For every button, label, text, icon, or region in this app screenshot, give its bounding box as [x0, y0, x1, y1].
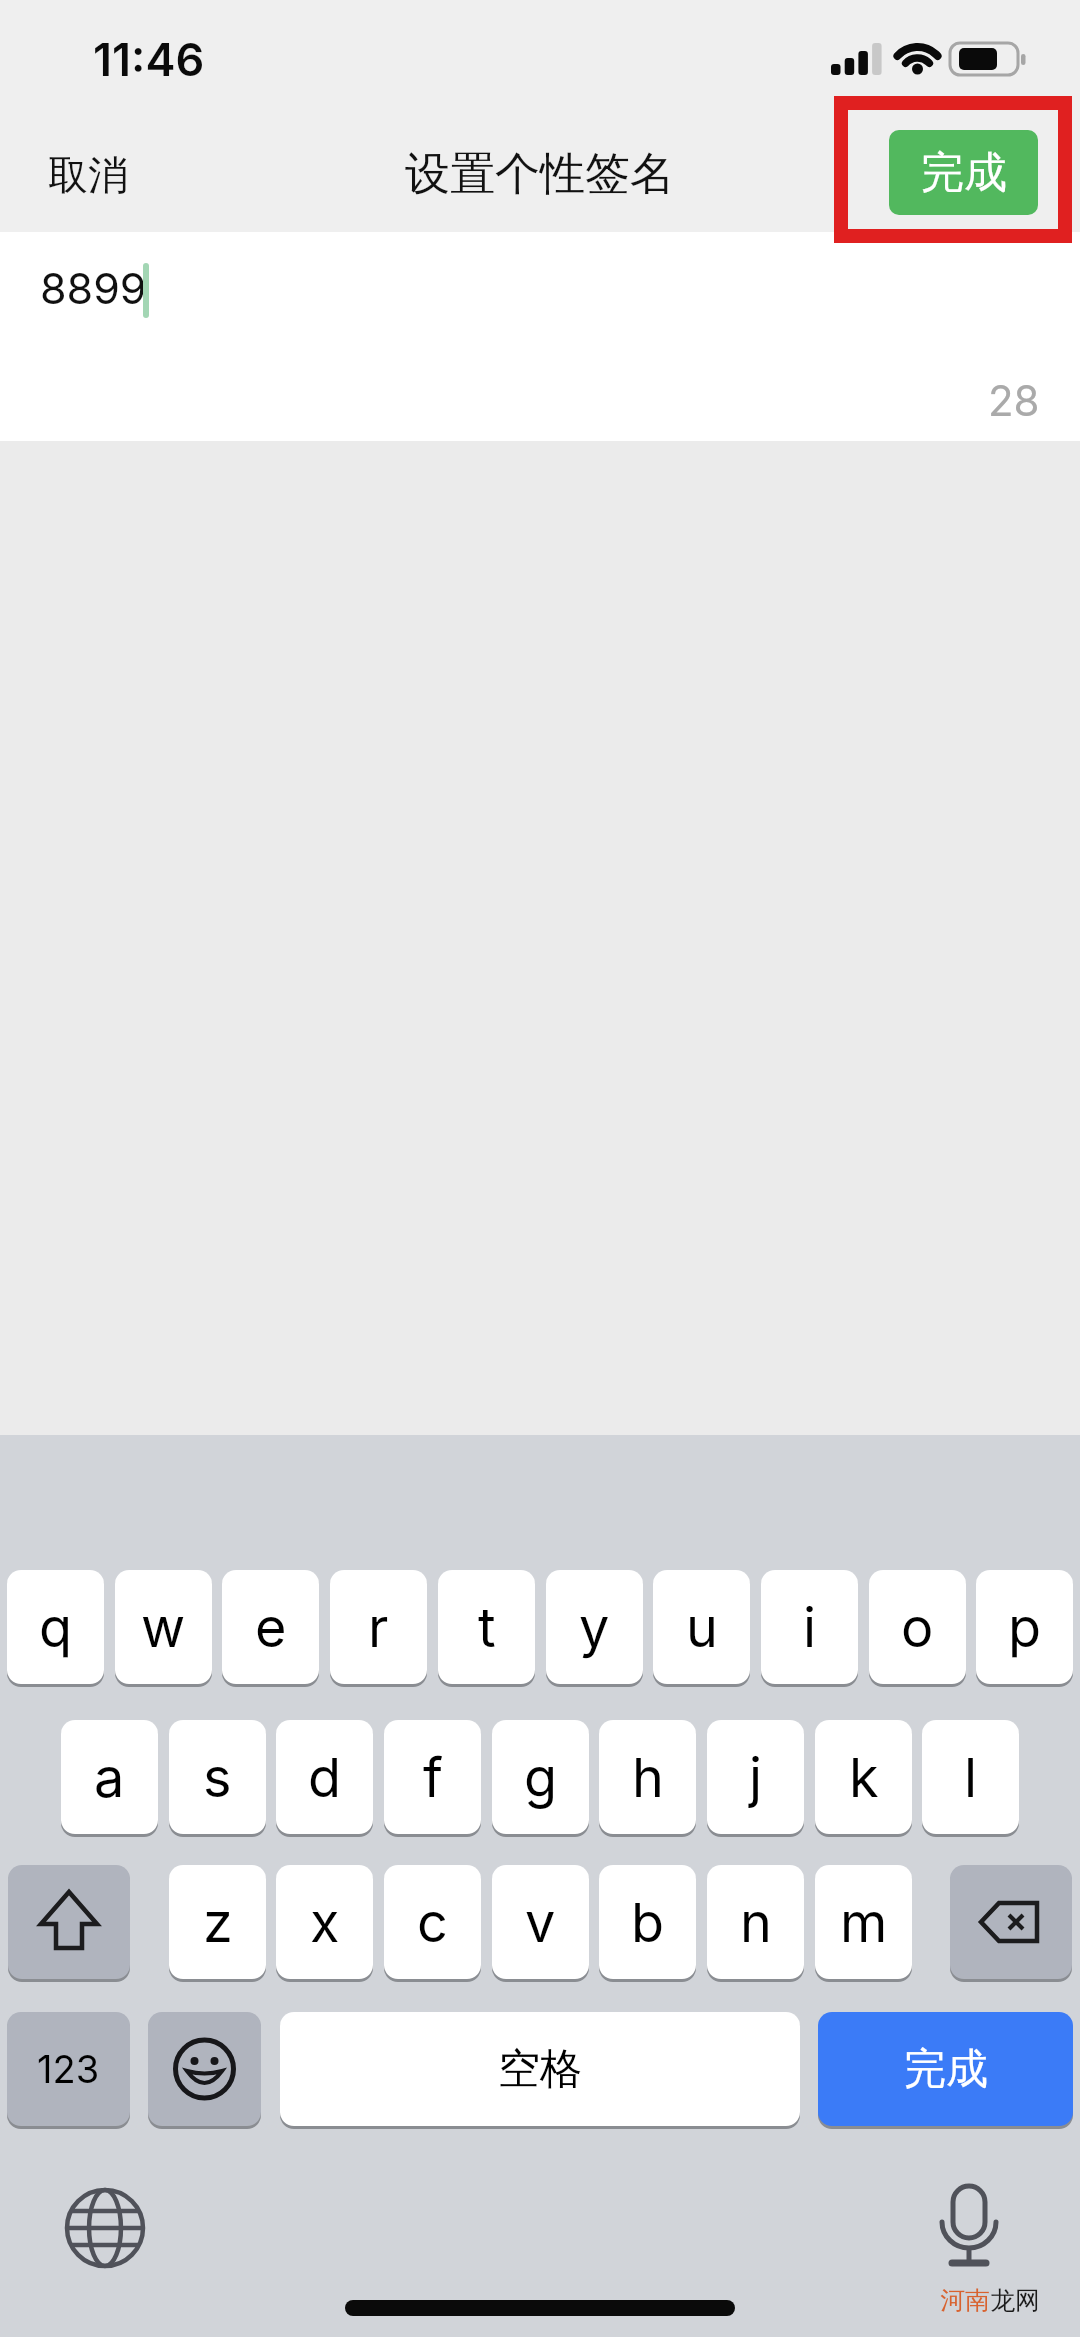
staticText: l [964, 1745, 978, 1810]
button[interactable]: r [330, 1570, 427, 1684]
button[interactable]: e [222, 1570, 319, 1684]
button[interactable] [8, 1865, 130, 1979]
button[interactable]: y [546, 1570, 643, 1684]
button[interactable]: l [922, 1720, 1019, 1834]
button[interactable]: w [115, 1570, 212, 1684]
button[interactable]: z [169, 1865, 266, 1979]
button[interactable]: 取消 [40, 150, 136, 196]
button[interactable]: f [384, 1720, 481, 1834]
staticText: n [740, 1890, 772, 1955]
button[interactable]: n [707, 1865, 804, 1979]
staticText: p [1008, 1595, 1042, 1660]
button[interactable]: k [815, 1720, 912, 1834]
staticText: c [417, 1890, 448, 1955]
staticText: 28 [988, 375, 1040, 425]
staticText: w [141, 1595, 186, 1660]
staticText: h [632, 1745, 664, 1810]
staticText: s [203, 1745, 232, 1810]
staticText: i [803, 1595, 817, 1660]
button[interactable]: d [276, 1720, 373, 1834]
staticText: 完成 [921, 146, 1007, 200]
staticText: 8899 [40, 262, 147, 314]
button[interactable]: c [384, 1865, 481, 1979]
staticText: 空格 [498, 2043, 582, 2096]
button[interactable]: q [7, 1570, 104, 1684]
button[interactable]: j [707, 1720, 804, 1834]
button[interactable]: h [599, 1720, 696, 1834]
staticText: 河南龙网 [940, 2285, 1040, 2316]
button[interactable]: m [815, 1865, 912, 1979]
staticText: x [310, 1890, 340, 1955]
staticText: g [524, 1745, 558, 1810]
staticText: r [368, 1595, 389, 1660]
staticText: b [631, 1890, 665, 1955]
staticText: f [423, 1745, 443, 1810]
button[interactable]: g [492, 1720, 589, 1834]
button[interactable] [950, 1865, 1072, 1979]
button[interactable]: 完成 [818, 2012, 1073, 2126]
button[interactable]: 空格 [280, 2012, 800, 2126]
button[interactable]: t [438, 1570, 535, 1684]
staticText: j [749, 1745, 763, 1810]
staticText: 完成 [904, 2043, 988, 2096]
button[interactable]: 123 [7, 2012, 130, 2126]
staticText: a [94, 1745, 125, 1810]
staticText: y [579, 1595, 610, 1660]
staticText: e [255, 1595, 287, 1660]
staticText: d [308, 1745, 342, 1810]
staticText: 11:46 [93, 32, 205, 84]
button[interactable]: i [761, 1570, 858, 1684]
button[interactable]: v [492, 1865, 589, 1979]
staticText: v [525, 1890, 556, 1955]
staticText: 取消 [48, 150, 128, 196]
button[interactable]: p [976, 1570, 1073, 1684]
button[interactable]: s [169, 1720, 266, 1834]
staticText: m [840, 1890, 888, 1955]
staticText: q [39, 1595, 73, 1660]
button[interactable]: b [599, 1865, 696, 1979]
staticText: z [203, 1890, 233, 1955]
staticText: 设置个性签名 [405, 146, 675, 200]
button[interactable]: o [869, 1570, 966, 1684]
button[interactable]: x [276, 1865, 373, 1979]
button[interactable]: 完成 [889, 130, 1038, 215]
button[interactable]: a [61, 1720, 158, 1834]
staticText: k [849, 1745, 879, 1810]
button[interactable]: u [653, 1570, 750, 1684]
staticText: t [478, 1595, 496, 1660]
staticText: u [686, 1595, 718, 1660]
staticText: o [901, 1595, 934, 1660]
staticText: 123 [37, 2046, 100, 2092]
button[interactable] [148, 2012, 261, 2126]
